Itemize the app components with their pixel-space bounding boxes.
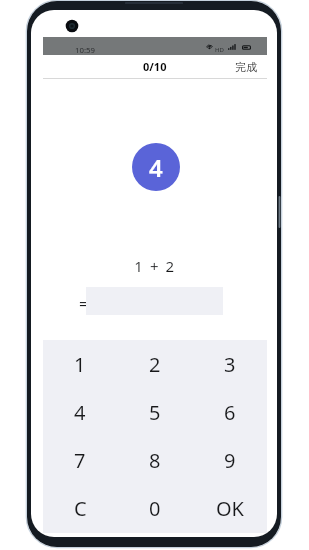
- staticText: 0: [149, 495, 161, 522]
- button[interactable]: 4: [43, 388, 117, 436]
- button[interactable]: 5: [117, 388, 192, 436]
- other: Front camera: [31, 10, 277, 537]
- staticText: 10:59: [75, 45, 95, 56]
- button[interactable]: 6: [192, 388, 267, 436]
- staticText: 9: [224, 447, 236, 474]
- button[interactable]: OK: [192, 484, 267, 532]
- button[interactable]: 4: [132, 143, 180, 191]
- button[interactable]: 9: [192, 436, 267, 484]
- staticText: 2: [149, 351, 161, 378]
- staticText: 6: [224, 399, 236, 426]
- button[interactable]: 0: [117, 484, 192, 532]
- staticText: 4: [74, 399, 86, 426]
- staticText: HD: [215, 46, 224, 54]
- button[interactable]: 8: [117, 436, 192, 484]
- staticText: 完成: [235, 60, 257, 74]
- staticText: C: [74, 495, 87, 522]
- staticText: 1: [74, 351, 86, 378]
- button[interactable]: 2: [117, 340, 192, 388]
- staticText: OK: [216, 495, 244, 522]
- staticText: 8: [149, 447, 161, 474]
- button[interactable]: 1: [43, 340, 117, 388]
- staticText: =: [79, 293, 89, 315]
- button[interactable]: 完成: [233, 57, 259, 77]
- staticText: 0/10: [143, 59, 167, 74]
- button[interactable]: 7: [43, 436, 117, 484]
- staticText: 1 + 2: [43, 256, 267, 276]
- staticText: 3: [224, 351, 236, 378]
- button[interactable]: 3: [192, 340, 267, 388]
- staticText: 5: [149, 399, 161, 426]
- staticText: 4: [149, 151, 163, 184]
- other: Status icons: [206, 42, 252, 54]
- button[interactable]: C: [43, 484, 117, 532]
- staticText: 7: [74, 447, 86, 474]
